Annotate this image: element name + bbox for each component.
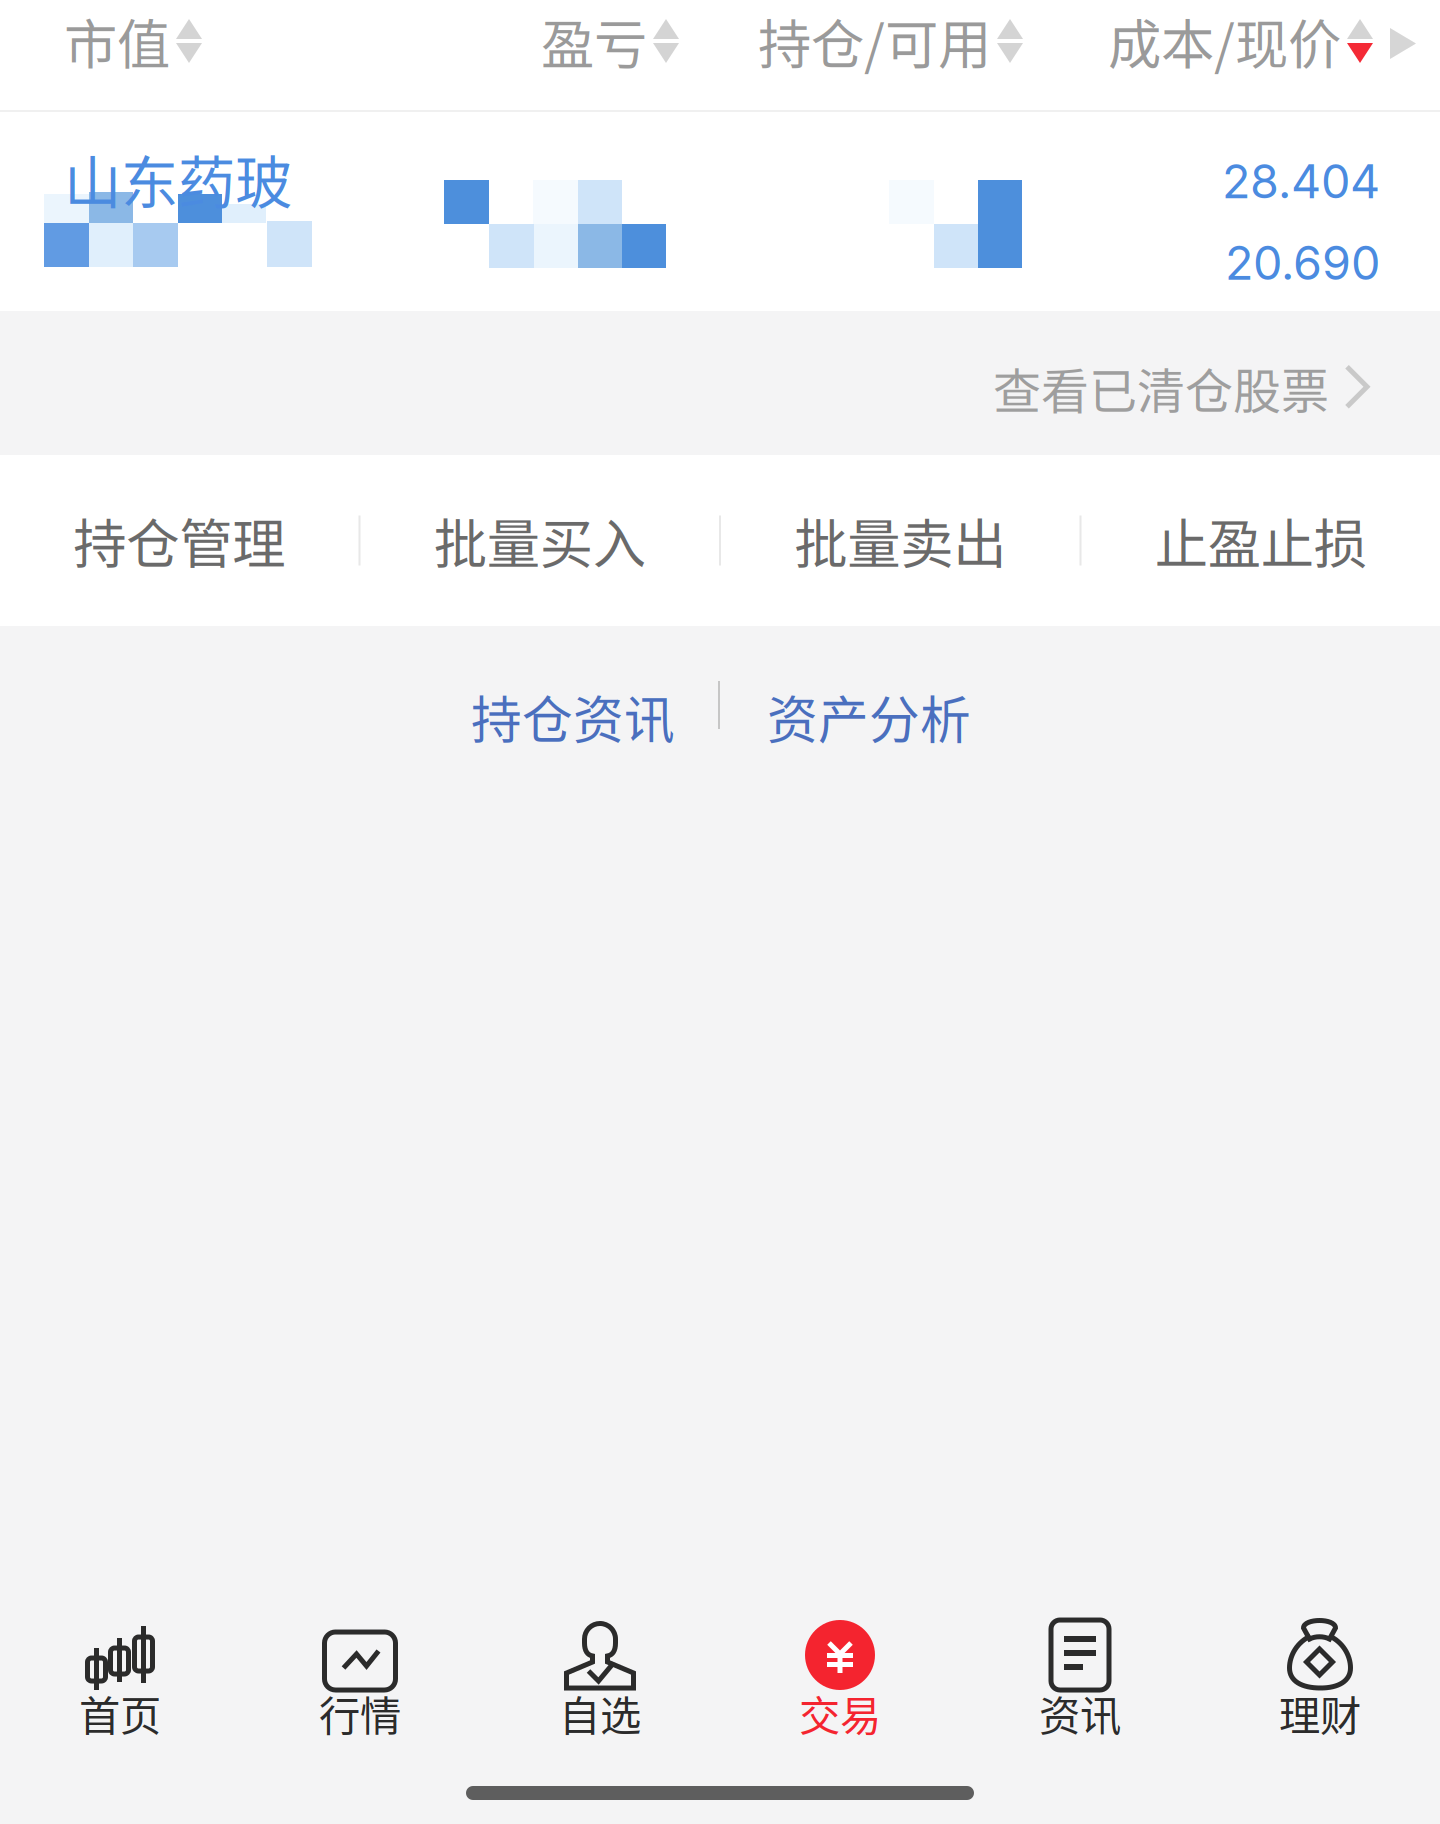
staticText: 查看已清仓股票	[993, 353, 1329, 422]
button[interactable]: 盈亏	[541, 11, 679, 71]
button[interactable]: 市值	[64, 11, 202, 71]
staticText: 首页	[79, 1683, 161, 1743]
staticText: 资产分析	[767, 680, 971, 753]
button[interactable]: 成本/现价	[1108, 11, 1373, 71]
staticText: 成本/现价	[1108, 2, 1341, 80]
button[interactable]: 交易	[720, 1580, 960, 1728]
button[interactable]: 持仓资讯	[447, 658, 699, 775]
staticText: 市值	[64, 2, 170, 80]
button[interactable]: 持仓管理	[0, 455, 358, 626]
button[interactable]: 自选	[480, 1580, 720, 1728]
button[interactable]: 行情	[240, 1580, 480, 1728]
staticText: 28.404	[1222, 153, 1380, 209]
button[interactable]: 资产分析	[743, 658, 995, 775]
button[interactable]: 首页	[0, 1580, 240, 1728]
staticText: 理财	[1279, 1683, 1361, 1743]
button[interactable]: 持仓/可用	[758, 11, 1023, 71]
staticText: 山东药玻	[64, 137, 292, 220]
staticText: 持仓/可用	[758, 2, 991, 80]
button[interactable]: 批量买入	[360, 455, 719, 626]
staticText: 批量卖出	[794, 502, 1006, 579]
staticText: 持仓管理	[73, 502, 285, 579]
staticText: 止盈止损	[1155, 502, 1367, 579]
button[interactable]: 更多列	[1380, 18, 1426, 69]
staticText: 行情	[319, 1683, 401, 1743]
staticText: 20.690	[1225, 234, 1380, 291]
button[interactable]: 止盈止损	[1081, 455, 1440, 626]
staticText: 自选	[559, 1683, 641, 1743]
staticText: 持仓资讯	[471, 680, 675, 753]
staticText: 盈亏	[541, 2, 647, 80]
button[interactable]: 理财	[1200, 1580, 1440, 1728]
staticText: 批量买入	[434, 502, 646, 579]
button[interactable]: 批量卖出	[721, 455, 1079, 626]
staticText: 资讯	[1039, 1683, 1121, 1743]
button[interactable]: 查看已清仓股票	[993, 343, 1371, 432]
button[interactable]: 资讯	[960, 1580, 1200, 1728]
staticText: 交易	[799, 1683, 881, 1743]
